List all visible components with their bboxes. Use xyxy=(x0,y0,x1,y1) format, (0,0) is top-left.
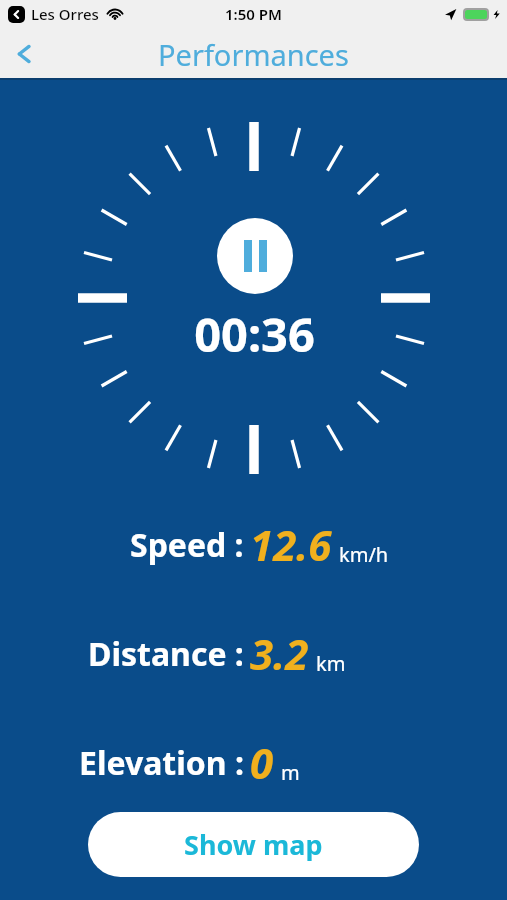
staticText: Speed : xyxy=(130,523,244,567)
staticText: 1:50 PM xyxy=(225,4,282,24)
staticText: 0 xyxy=(250,734,274,791)
staticText: Performances xyxy=(158,35,349,74)
staticText: km/h xyxy=(339,541,389,568)
button[interactable]: Pause xyxy=(217,218,293,294)
staticText: Elevation : xyxy=(79,741,244,785)
button[interactable]: Back xyxy=(0,30,48,78)
staticText: m xyxy=(281,759,300,786)
staticText: 12.6 xyxy=(250,516,332,573)
staticText: km xyxy=(316,650,346,677)
button[interactable]: Show map xyxy=(88,812,419,877)
staticText: Distance : xyxy=(88,632,244,676)
staticText: Show map xyxy=(184,826,323,863)
staticText: Les Orres xyxy=(31,4,99,24)
staticText: 00:36 xyxy=(194,302,315,366)
staticText: 3.2 xyxy=(250,625,309,682)
